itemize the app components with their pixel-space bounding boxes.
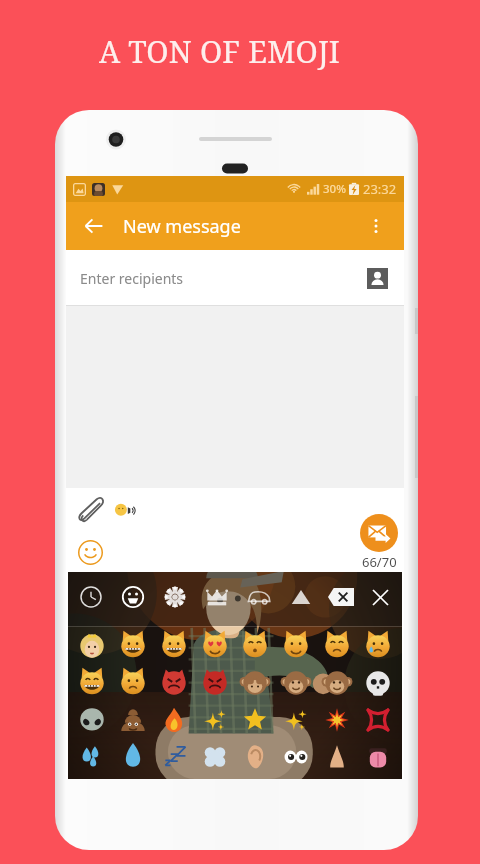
button[interactable]: Smileys	[120, 584, 146, 610]
staticText: Enter recipients	[80, 269, 184, 288]
button[interactable]: Emoji	[157, 703, 191, 737]
button[interactable]: Emoji	[279, 666, 313, 700]
button[interactable]: Emoji	[157, 666, 191, 700]
button[interactable]: Emoji	[75, 666, 109, 700]
button[interactable]: Emoji	[116, 740, 150, 774]
button[interactable]: Emoji	[320, 740, 354, 774]
button[interactable]: Sound emoji	[112, 498, 138, 524]
staticText: 23:32	[363, 180, 397, 198]
button[interactable]: Nature	[162, 584, 188, 610]
button[interactable]: Emoji	[238, 629, 272, 663]
button[interactable]: Emoji	[238, 703, 272, 737]
button[interactable]: Attach file	[74, 495, 106, 527]
button[interactable]: Emoji	[320, 703, 354, 737]
button[interactable]: Emoji	[157, 629, 191, 663]
button[interactable]: Emoji	[361, 666, 395, 700]
button[interactable]: Emoji	[198, 703, 232, 737]
button[interactable]: Emoji	[75, 703, 109, 737]
button[interactable]: Emoji	[116, 703, 150, 737]
button[interactable]: Emoji	[361, 740, 395, 774]
button[interactable]: Emoji	[361, 629, 395, 663]
button[interactable]: Emoji	[198, 666, 232, 700]
button[interactable]: Symbols	[288, 584, 314, 610]
button[interactable]: Back	[79, 211, 109, 241]
button[interactable]: Emoji	[279, 629, 313, 663]
button[interactable]: Close keyboard	[368, 585, 392, 609]
button[interactable]: Emoji	[75, 740, 109, 774]
button[interactable]: Emoji	[116, 666, 150, 700]
button[interactable]: Emoji	[157, 740, 191, 774]
button[interactable]: Emoji	[279, 740, 313, 774]
staticText: New message	[123, 214, 241, 239]
button[interactable]: Emoji	[198, 740, 232, 774]
button[interactable]: Recent	[78, 584, 104, 610]
button[interactable]: Send message	[360, 514, 398, 552]
button[interactable]: Emoji	[116, 629, 150, 663]
button[interactable]: Emoji	[238, 740, 272, 774]
button[interactable]: Emoji	[279, 703, 313, 737]
staticText: 66/70	[362, 553, 397, 571]
button[interactable]: Emoji keyboard	[74, 536, 106, 568]
staticText: 30%	[323, 181, 346, 197]
button[interactable]: Emoji	[238, 666, 272, 700]
button[interactable]: Objects	[204, 584, 230, 610]
button[interactable]: Emoji	[320, 666, 354, 700]
button[interactable]: Enter recipients	[80, 250, 390, 306]
staticText: A TON OF EMOJI	[99, 31, 341, 72]
button[interactable]: Emoji	[198, 629, 232, 663]
button[interactable]: More options	[361, 211, 391, 241]
button[interactable]: Travel	[246, 584, 272, 610]
button[interactable]: Pick contacts	[364, 265, 390, 291]
button[interactable]: Emoji	[320, 629, 354, 663]
button[interactable]: Backspace	[328, 588, 354, 606]
button[interactable]: Emoji	[361, 703, 395, 737]
button[interactable]: Emoji	[75, 629, 109, 663]
